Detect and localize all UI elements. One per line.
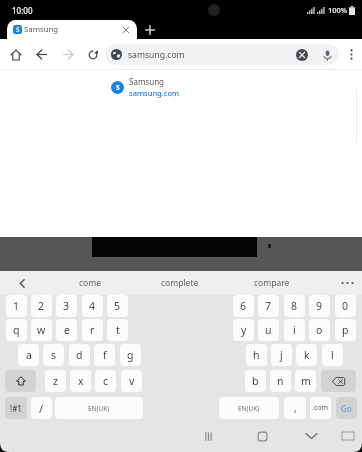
button[interactable]: z [45, 370, 66, 392]
staticText: 8 [291, 299, 298, 313]
button[interactable]: / [31, 397, 52, 419]
button[interactable]: Back [30, 39, 54, 70]
button[interactable]: Clear [296, 49, 308, 61]
staticText: Samsung [129, 76, 164, 87]
button[interactable]: 2 [31, 295, 52, 317]
button[interactable]: Space [219, 397, 279, 419]
button[interactable]: r [82, 319, 103, 341]
button[interactable]: s [43, 344, 64, 366]
button[interactable]: w [31, 319, 52, 341]
button[interactable]: Switch keyboard [330, 420, 362, 452]
button[interactable]: Recents [190, 420, 226, 452]
staticText: d [76, 348, 83, 362]
button[interactable]: 5 [107, 295, 128, 317]
staticText: w [37, 323, 46, 337]
staticText: complete [161, 277, 199, 289]
button[interactable]: 0 [335, 295, 356, 317]
staticText: 4 [89, 299, 96, 313]
button[interactable]: m [295, 370, 316, 392]
staticText: EN(UK) [238, 404, 260, 413]
button[interactable]: Previous suggestions [0, 271, 44, 295]
button[interactable]: q [6, 319, 27, 341]
button[interactable]: Go [336, 397, 357, 419]
button[interactable]: Space [55, 397, 143, 419]
button[interactable]: d [69, 344, 90, 366]
button[interactable]: l [322, 344, 343, 366]
button[interactable]: S [7, 20, 137, 39]
staticText: 6 [240, 299, 247, 313]
button[interactable]: Home [4, 39, 28, 70]
button[interactable]: 7 [258, 295, 279, 317]
button[interactable]: c [95, 370, 116, 392]
button[interactable]: More options [341, 39, 361, 70]
button[interactable]: S [0, 74, 362, 100]
button[interactable]: Backspace [321, 370, 356, 392]
button[interactable]: g [120, 344, 141, 366]
staticText: j [280, 348, 283, 362]
button[interactable]: 4 [82, 295, 103, 317]
staticText: 1 [13, 299, 20, 313]
button[interactable]: p [335, 319, 356, 341]
staticText: EN(UK) [88, 404, 110, 413]
staticText: come [79, 277, 101, 289]
staticText: q [13, 323, 20, 337]
button[interactable]: k [296, 344, 317, 366]
staticText: Go [341, 403, 352, 414]
staticText: y [241, 323, 247, 337]
button[interactable]: More suggestions [332, 271, 362, 295]
button[interactable]: b [245, 370, 266, 392]
button[interactable]: a [18, 344, 39, 366]
button[interactable]: Voice search [321, 49, 333, 61]
button[interactable]: !#1 [5, 397, 27, 419]
button[interactable]: .com [310, 397, 331, 419]
staticText: c [103, 374, 109, 388]
button[interactable]: t [107, 319, 128, 341]
button[interactable]: New tab [140, 20, 160, 39]
button[interactable]: 1 [6, 295, 27, 317]
button[interactable]: , [284, 397, 306, 419]
button[interactable]: x [70, 370, 91, 392]
button[interactable]: Home [244, 420, 280, 452]
button[interactable]: Forward [56, 39, 80, 70]
staticText: 3 [63, 299, 70, 313]
staticText: S [16, 25, 20, 34]
staticText: 9 [316, 299, 323, 313]
button[interactable]: 3 [56, 295, 77, 317]
staticText: k [304, 348, 310, 362]
staticText: samsung.com [128, 49, 185, 61]
button[interactable]: h [246, 344, 267, 366]
button[interactable]: u [258, 319, 279, 341]
button[interactable]: 8 [284, 295, 305, 317]
button[interactable]: Close tab [118, 22, 134, 38]
staticText: 10:00 [12, 5, 33, 16]
staticText: S [116, 83, 120, 92]
button[interactable]: 9 [309, 295, 330, 317]
button[interactable]: Reload [81, 39, 105, 70]
staticText: n [277, 374, 284, 388]
button[interactable]: samsung.com [105, 44, 339, 65]
button[interactable]: e [56, 319, 77, 341]
button[interactable]: o [309, 319, 330, 341]
button[interactable]: f [94, 344, 115, 366]
button[interactable]: j [271, 344, 292, 366]
staticText: l [331, 348, 334, 362]
button[interactable]: come [54, 271, 126, 295]
button[interactable]: i [284, 319, 305, 341]
button[interactable]: compare [236, 271, 308, 295]
button[interactable]: n [270, 370, 291, 392]
staticText: a [26, 348, 32, 362]
staticText: z [53, 374, 58, 388]
staticText: 7 [265, 299, 272, 313]
staticText: i [293, 323, 296, 337]
button[interactable]: 6 [233, 295, 254, 317]
staticText: x [78, 374, 84, 388]
button[interactable]: Shift [5, 370, 36, 392]
staticText: , [294, 401, 297, 415]
staticText: / [39, 401, 44, 416]
button[interactable]: y [233, 319, 254, 341]
button[interactable]: Hide keyboard [293, 420, 329, 452]
button[interactable]: v [121, 370, 142, 392]
staticText: u [265, 323, 272, 337]
staticText: m [301, 374, 311, 388]
button[interactable]: complete [144, 271, 216, 295]
